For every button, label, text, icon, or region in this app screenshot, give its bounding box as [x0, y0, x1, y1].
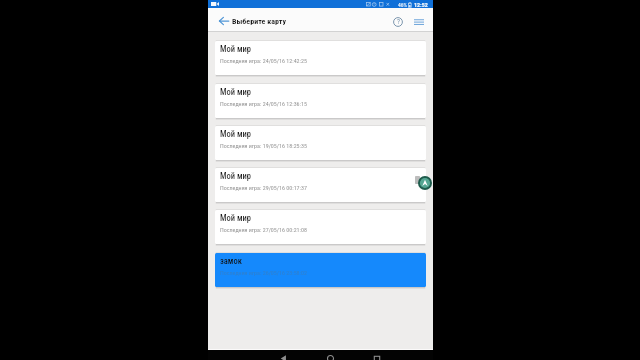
- staticText: Мой мир: [220, 213, 251, 223]
- button[interactable]: Recents: [371, 356, 383, 360]
- staticText: Последняя игра: 24/05/16 12:42:25: [220, 57, 307, 64]
- button[interactable]: Assistant: [418, 176, 432, 190]
- staticText: Мой мир: [220, 87, 251, 97]
- staticText: Мой мир: [220, 129, 251, 139]
- button[interactable]: Home: [324, 355, 336, 360]
- staticText: 46%: [398, 2, 407, 8]
- staticText: Последняя игра: 26/05/16 23:58:02: [220, 269, 307, 276]
- button[interactable]: Мой мир: [215, 126, 426, 160]
- button[interactable]: Help: [391, 15, 404, 28]
- staticText: Последняя игра: 29/05/16 00:17:37: [220, 184, 307, 191]
- button[interactable]: Back: [277, 355, 289, 360]
- button[interactable]: Menu: [412, 15, 425, 28]
- staticText: Последняя игра: 19/05/16 18:25:35: [220, 142, 307, 149]
- button[interactable]: замок: [215, 253, 426, 287]
- button[interactable]: Мой мир: [215, 210, 426, 244]
- staticText: Последняя игра: 24/05/16 12:36:15: [220, 100, 307, 107]
- staticText: Последняя игра: 27/05/16 00:21:08: [220, 226, 307, 233]
- staticText: Мой мир: [220, 171, 251, 181]
- staticText: Выберите карту: [232, 17, 287, 26]
- button[interactable]: Мой мир: [215, 168, 426, 202]
- staticText: 12:52: [414, 1, 428, 8]
- staticText: ?: [397, 18, 400, 26]
- button[interactable]: Мой мир: [215, 41, 426, 75]
- staticText: Мой мир: [220, 44, 251, 54]
- button[interactable]: Мой мир: [215, 84, 426, 118]
- staticText: замок: [220, 256, 242, 266]
- button[interactable]: Back: [217, 14, 230, 27]
